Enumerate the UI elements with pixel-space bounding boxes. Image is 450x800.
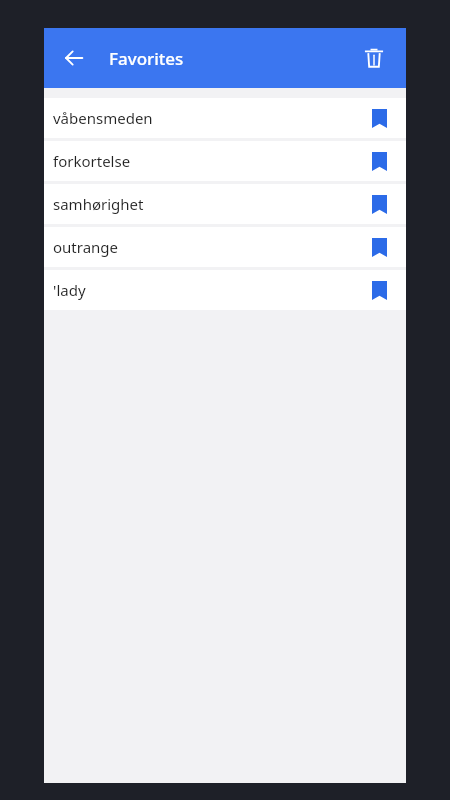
staticText: outrange (53, 237, 362, 257)
button[interactable]: våbensmeden (44, 98, 406, 138)
button[interactable]: Delete all favorites (352, 36, 396, 80)
button[interactable]: Remove bookmark (362, 101, 396, 135)
staticText: samhørighet (53, 194, 362, 214)
button[interactable]: forkortelse (44, 141, 406, 181)
staticText: våbensmeden (53, 108, 362, 128)
button[interactable]: 'lady (44, 270, 406, 310)
button[interactable]: Remove bookmark (362, 230, 396, 264)
button[interactable]: Remove bookmark (362, 187, 396, 221)
button[interactable]: samhørighet (44, 184, 406, 224)
staticText: 'lady (53, 280, 362, 300)
button[interactable]: Remove bookmark (362, 144, 396, 178)
button[interactable]: Back (52, 36, 96, 80)
button[interactable]: outrange (44, 227, 406, 267)
button[interactable]: Remove bookmark (362, 273, 396, 307)
staticText: Favorites (109, 47, 184, 70)
staticText: forkortelse (53, 151, 362, 171)
